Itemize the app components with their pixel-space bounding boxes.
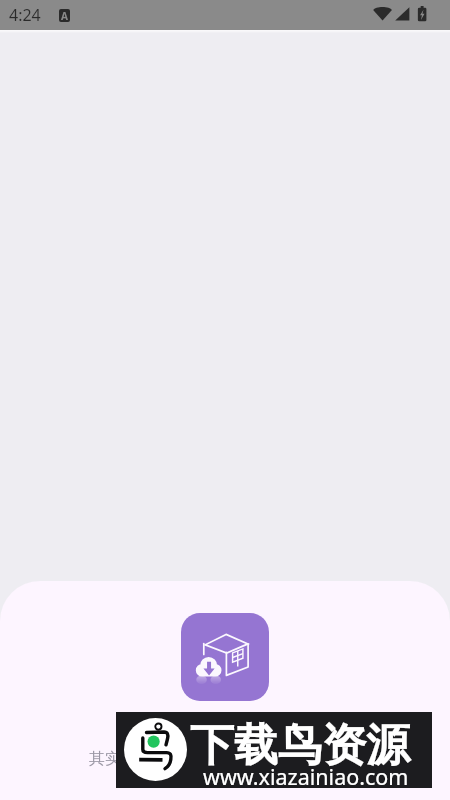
staticText: 其实这里还有更多好玩的应用等你发现	[0, 749, 450, 769]
staticText: 下载鸟资源	[190, 718, 410, 773]
button[interactable]: App icon	[181, 613, 269, 701]
staticText: 4:24	[9, 4, 41, 26]
staticText: www.xiazainiao.com	[203, 762, 409, 791]
staticText: A	[61, 9, 68, 22]
